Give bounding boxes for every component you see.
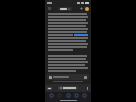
button[interactable]: Bookmarks [82, 93, 87, 98]
button[interactable]: More options [85, 86, 89, 90]
button[interactable]: Back [49, 93, 54, 98]
button[interactable]: New chat [79, 6, 84, 11]
other: Voice input [84, 76, 87, 79]
button[interactable] [58, 86, 78, 90]
button[interactable] [47, 87, 52, 90]
button[interactable] [58, 7, 72, 11]
button[interactable]: Forward [57, 93, 62, 98]
button[interactable]: Profile [85, 7, 89, 11]
button[interactable]: Home [66, 93, 71, 98]
button[interactable]: Voice input [47, 74, 89, 80]
button[interactable]: Tabs [74, 93, 79, 98]
button[interactable]: Menu [47, 6, 52, 11]
